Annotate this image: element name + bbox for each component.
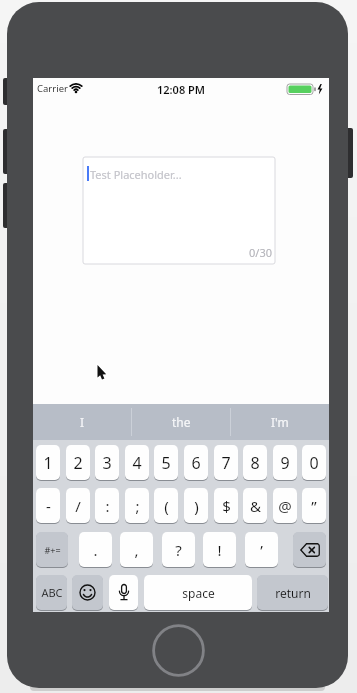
staticText: ABC xyxy=(41,585,63,600)
button[interactable]: 7 xyxy=(214,445,238,480)
button[interactable]: 9 xyxy=(273,445,297,480)
button[interactable]: 4 xyxy=(125,445,149,480)
button[interactable]: , xyxy=(120,532,153,567)
button[interactable]: ) xyxy=(184,488,208,523)
button[interactable] xyxy=(109,575,138,610)
staticText: 8 xyxy=(250,452,260,474)
staticText: 3 xyxy=(102,452,112,474)
button[interactable]: 3 xyxy=(95,445,119,480)
button[interactable]: I xyxy=(33,404,132,440)
staticText: I'm xyxy=(271,414,289,430)
button[interactable]: @ xyxy=(273,488,297,523)
button[interactable]: 2 xyxy=(66,445,90,480)
button[interactable]: - xyxy=(36,488,60,523)
staticText: 2 xyxy=(73,452,83,474)
button[interactable]: ’ xyxy=(245,532,278,567)
button[interactable]: & xyxy=(243,488,267,523)
button[interactable]: 6 xyxy=(184,445,208,480)
button[interactable] xyxy=(83,157,275,264)
staticText: / xyxy=(75,496,81,516)
button[interactable]: $ xyxy=(214,488,238,523)
button[interactable] xyxy=(72,575,103,610)
button[interactable]: ! xyxy=(203,532,236,567)
staticText: Carrier xyxy=(37,82,68,95)
button[interactable]: the xyxy=(132,404,231,440)
button[interactable]: . xyxy=(79,532,112,567)
staticText: #+= xyxy=(44,544,61,556)
button[interactable]: ; xyxy=(125,488,149,523)
staticText: 1 xyxy=(43,452,53,474)
staticText: 12:08 PM xyxy=(157,82,206,95)
button[interactable]: space xyxy=(144,575,252,610)
staticText: I xyxy=(80,414,85,430)
button[interactable]: ABC xyxy=(36,575,67,610)
staticText: . xyxy=(93,540,98,560)
staticText: 0 xyxy=(309,452,319,474)
staticText: ; xyxy=(135,496,140,516)
button[interactable]: ” xyxy=(302,488,326,523)
staticText: 5 xyxy=(161,452,171,474)
staticText: ! xyxy=(217,540,222,560)
staticText: : xyxy=(105,496,110,516)
button[interactable]: 0 xyxy=(302,445,326,480)
button[interactable]: 5 xyxy=(154,445,178,480)
button[interactable]: ? xyxy=(162,532,195,567)
staticText: 4 xyxy=(132,452,142,474)
button[interactable]: I'm xyxy=(230,404,329,440)
button[interactable]: 1 xyxy=(36,445,60,480)
button[interactable] xyxy=(293,532,326,567)
staticText: return xyxy=(275,585,311,601)
button[interactable]: 8 xyxy=(243,445,267,480)
button[interactable]: return xyxy=(257,575,328,610)
staticText: ( xyxy=(164,496,169,516)
staticText: 9 xyxy=(280,452,290,474)
staticText: , xyxy=(134,540,139,560)
staticText: ) xyxy=(194,496,199,516)
staticText: 7 xyxy=(221,452,231,474)
staticText: ’ xyxy=(260,540,263,560)
staticText: $ xyxy=(222,496,231,516)
button[interactable]: : xyxy=(95,488,119,523)
staticText: ? xyxy=(175,540,182,560)
staticText: Test Placeholder... xyxy=(90,167,182,182)
button[interactable]: ( xyxy=(154,488,178,523)
staticText: the xyxy=(172,414,191,430)
staticText: @ xyxy=(278,496,292,516)
button[interactable]: #+= xyxy=(36,532,68,567)
staticText: - xyxy=(46,496,51,516)
staticText: 6 xyxy=(191,452,201,474)
button[interactable]: / xyxy=(66,488,90,523)
staticText: ” xyxy=(311,496,317,516)
staticText: 0/30 xyxy=(249,245,272,260)
staticText: & xyxy=(250,496,261,516)
staticText: space xyxy=(182,585,215,601)
